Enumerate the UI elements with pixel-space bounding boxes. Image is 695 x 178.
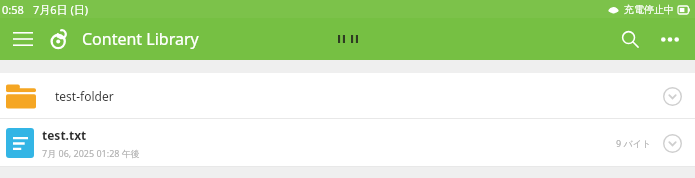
- button[interactable]: Search: [615, 24, 645, 54]
- button[interactable]: Open navigation drawer: [8, 24, 38, 54]
- button[interactable]: More options: [655, 24, 685, 54]
- button[interactable]: Expand test-folder options: [659, 83, 685, 109]
- button[interactable]: test-folder: [0, 73, 695, 118]
- staticText: 9 バイト: [616, 137, 652, 149]
- staticText: test-folder: [55, 88, 114, 104]
- staticText: test.txt: [42, 127, 87, 143]
- staticText: Content Library: [82, 28, 199, 50]
- button[interactable]: test.txt: [0, 119, 695, 166]
- staticText: 充電停止中: [624, 3, 674, 16]
- staticText: 7月6日 (日): [33, 2, 89, 17]
- staticText: 0:58: [2, 2, 24, 17]
- button[interactable]: Expand test.txt options: [659, 130, 685, 156]
- staticText: 7月 06, 2025 01:28 午後: [42, 147, 140, 159]
